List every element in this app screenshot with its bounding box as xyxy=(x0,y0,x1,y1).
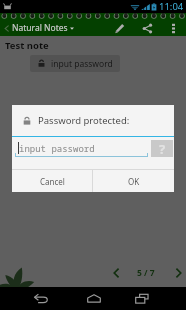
staticText: ? xyxy=(159,140,166,157)
button[interactable]: OK xyxy=(93,170,174,192)
button[interactable]: Cancel xyxy=(12,170,92,192)
staticText: input password xyxy=(51,58,113,70)
button[interactable]: Next page xyxy=(168,264,186,282)
staticText: OK xyxy=(128,176,140,187)
staticText: Password protected: xyxy=(38,114,130,127)
button[interactable]: Previous page xyxy=(106,264,126,282)
button[interactable]: input password xyxy=(30,55,120,72)
staticText: Test note xyxy=(5,39,49,52)
button[interactable]: Help xyxy=(151,140,173,157)
button[interactable]: Recent apps xyxy=(118,287,166,310)
button[interactable]: Share xyxy=(133,20,161,36)
staticText: 11:04 xyxy=(159,0,184,13)
button[interactable]: Edit xyxy=(105,20,133,36)
button[interactable]: Home xyxy=(64,287,118,310)
button[interactable]: Back xyxy=(16,287,64,310)
staticText: Natural Notes xyxy=(12,22,68,34)
button[interactable]: More options xyxy=(161,20,185,36)
staticText: input password xyxy=(19,142,95,154)
staticText: Cancel xyxy=(40,176,65,187)
staticText: 5 / 7 xyxy=(137,267,155,279)
